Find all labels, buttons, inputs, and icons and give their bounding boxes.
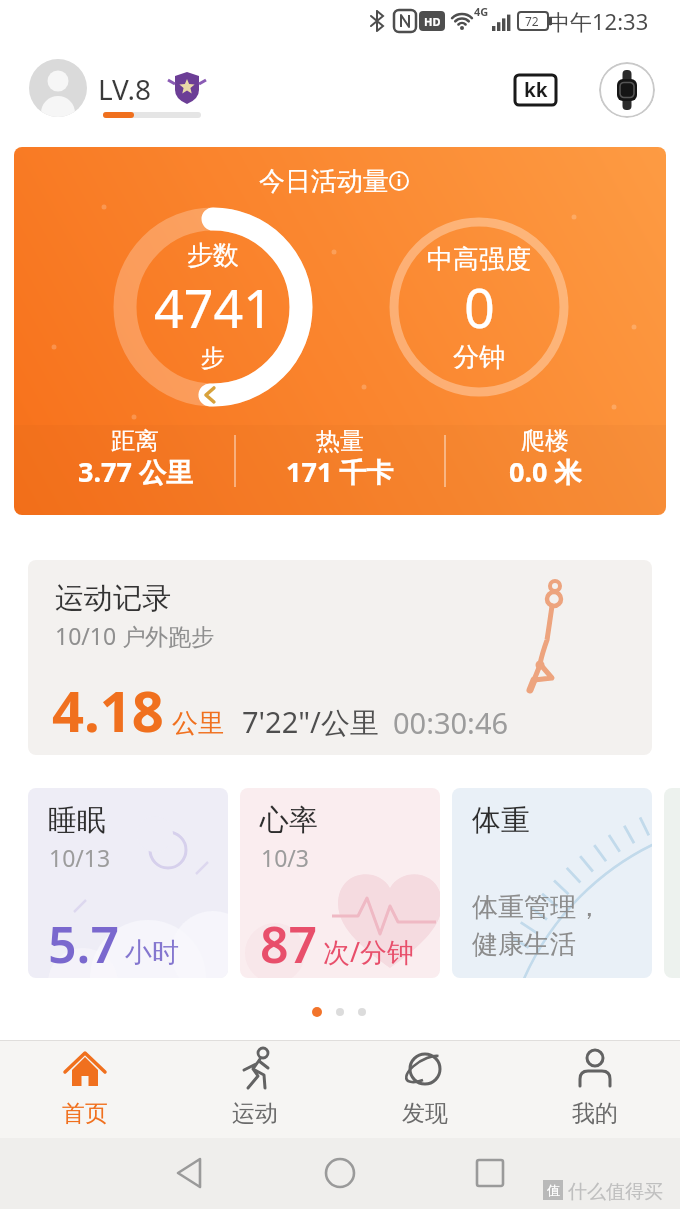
button[interactable]: 发现 (340, 1040, 510, 1138)
staticText: 5.7 (48, 910, 119, 978)
button[interactable] (29, 59, 87, 117)
staticText: 值 (547, 1182, 560, 1198)
staticText: 10/10 户外跑步 (55, 620, 215, 651)
staticText: 分钟 (453, 341, 505, 374)
button[interactable]: 运动记录 (28, 560, 652, 755)
button[interactable]: kk (513, 73, 558, 107)
staticText: 体重管理， (472, 891, 602, 924)
staticText: 公里 (172, 707, 224, 740)
staticText: 运动 (232, 1099, 278, 1128)
staticText: 今日活动量 (259, 165, 389, 198)
staticText: 4G (474, 4, 489, 19)
staticText: 小时 (125, 936, 179, 970)
button[interactable]: 睡眠 (28, 788, 228, 978)
staticText: 发现 (402, 1099, 448, 1128)
staticText: 次/分钟 (323, 933, 415, 970)
staticText: 0 (464, 270, 495, 344)
staticText: 睡眠 (48, 802, 106, 839)
button[interactable]: 运动 (170, 1040, 340, 1138)
button[interactable]: LV.8 (98, 70, 208, 104)
button[interactable]: 我的 (510, 1040, 680, 1138)
staticText: 0.0 米 (509, 453, 582, 490)
staticText: 中午12:33 (548, 6, 649, 36)
staticText: 中高强度 (427, 243, 531, 276)
staticText: 首页 (62, 1099, 108, 1128)
staticText: 体重 (472, 802, 530, 839)
button[interactable] (599, 62, 655, 118)
button[interactable]: 体重 (452, 788, 652, 978)
staticText: 距离 (111, 426, 159, 456)
staticText: LV.8 (98, 70, 152, 104)
staticText: 00:30:46 (393, 703, 509, 742)
staticText: 运动记录 (55, 580, 171, 617)
button[interactable]: 今日活动量 (14, 147, 666, 515)
staticText: kk (524, 77, 548, 103)
staticText: 4.18 (52, 672, 164, 748)
staticText: 心率 (260, 802, 318, 839)
staticText: 步 (201, 343, 225, 373)
staticText: 87 (260, 910, 318, 978)
staticText: HD (424, 14, 441, 29)
button[interactable]: 心率 (240, 788, 440, 978)
staticText: 爬楼 (521, 426, 569, 456)
staticText: 7'22"/公里 (242, 702, 379, 742)
staticText: 健康生活 (472, 928, 576, 961)
staticText: 什么值得买 (568, 1180, 663, 1204)
staticText: 热量 (316, 426, 364, 456)
staticText: 步数 (187, 239, 239, 272)
staticText: 10/3 (261, 842, 310, 873)
button[interactable]: 首页 (0, 1040, 170, 1138)
staticText: 3.77 公里 (78, 453, 193, 490)
staticText: 我的 (572, 1099, 618, 1128)
staticText: 10/13 (49, 842, 111, 873)
staticText: 72 (525, 13, 539, 29)
staticText: 4741 (154, 272, 273, 343)
staticText: 171 千卡 (286, 453, 394, 490)
